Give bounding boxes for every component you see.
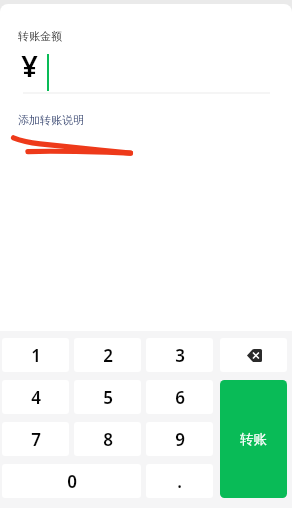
button[interactable]: 转账	[220, 380, 287, 498]
staticText: 1	[31, 344, 41, 367]
button[interactable]: 9	[146, 422, 213, 456]
button[interactable]: 4	[2, 380, 69, 414]
button[interactable]: 6	[146, 380, 213, 414]
staticText: 3	[175, 344, 185, 367]
button[interactable]: 0	[2, 464, 141, 498]
staticText: 0	[67, 470, 77, 493]
staticText: 7	[31, 428, 41, 451]
staticText: 6	[175, 386, 185, 409]
button[interactable]: 2	[74, 338, 141, 372]
button[interactable]: .	[146, 464, 213, 498]
button[interactable]: 添加转账说明	[18, 113, 84, 127]
staticText: 转账	[240, 431, 267, 448]
button[interactable]: 3	[146, 338, 213, 372]
staticText: 转账金额	[18, 29, 62, 43]
button[interactable]: 7	[2, 422, 69, 456]
button[interactable]: 1	[2, 338, 69, 372]
staticText: 8	[103, 428, 113, 451]
staticText: 2	[103, 344, 113, 367]
staticText: 添加转账说明	[18, 113, 84, 127]
staticText: ¥	[21, 46, 38, 85]
button[interactable]: Backspace	[220, 338, 287, 372]
button[interactable]: 5	[74, 380, 141, 414]
staticText: 9	[175, 428, 185, 451]
staticText: 5	[103, 386, 113, 409]
staticText: 4	[31, 386, 41, 409]
staticText: .	[177, 470, 182, 493]
button[interactable]: 8	[74, 422, 141, 456]
